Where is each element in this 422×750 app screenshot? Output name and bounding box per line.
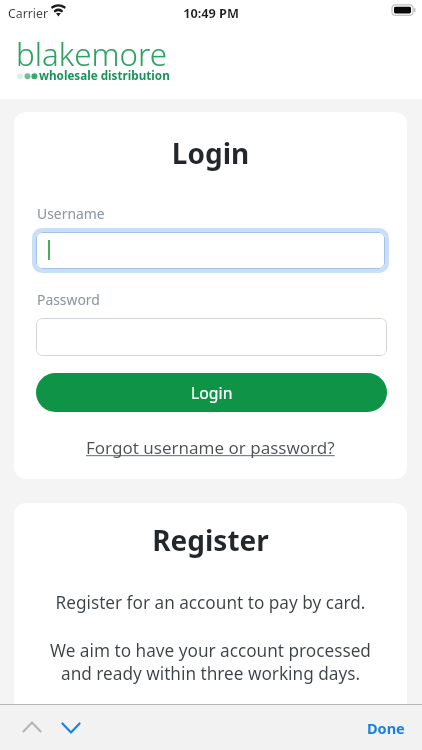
staticText: Register for an account to pay by card. [14, 591, 407, 614]
button[interactable]: Previous field [11, 715, 53, 739]
staticText: Forgot username or password? [86, 436, 335, 459]
staticText: We aim to have your account processed an… [14, 639, 407, 685]
staticText: Done [367, 718, 405, 738]
staticText: wholesale distribution [39, 67, 170, 83]
staticText: Login [14, 134, 407, 172]
staticText: Login [191, 382, 233, 404]
button[interactable]: Login [36, 373, 387, 412]
staticText: blakemore [16, 33, 167, 76]
staticText: Carrier [8, 5, 49, 22]
staticText: Password [37, 290, 100, 309]
button[interactable]: Next field [50, 716, 92, 740]
staticText: 10:49 PM [0, 4, 422, 21]
button[interactable]: Done [361, 710, 411, 746]
button[interactable]: Forgot username or password? [14, 434, 407, 460]
staticText: Register [14, 521, 407, 559]
button[interactable] [36, 232, 385, 269]
staticText: Username [37, 204, 105, 223]
button[interactable] [36, 318, 387, 356]
